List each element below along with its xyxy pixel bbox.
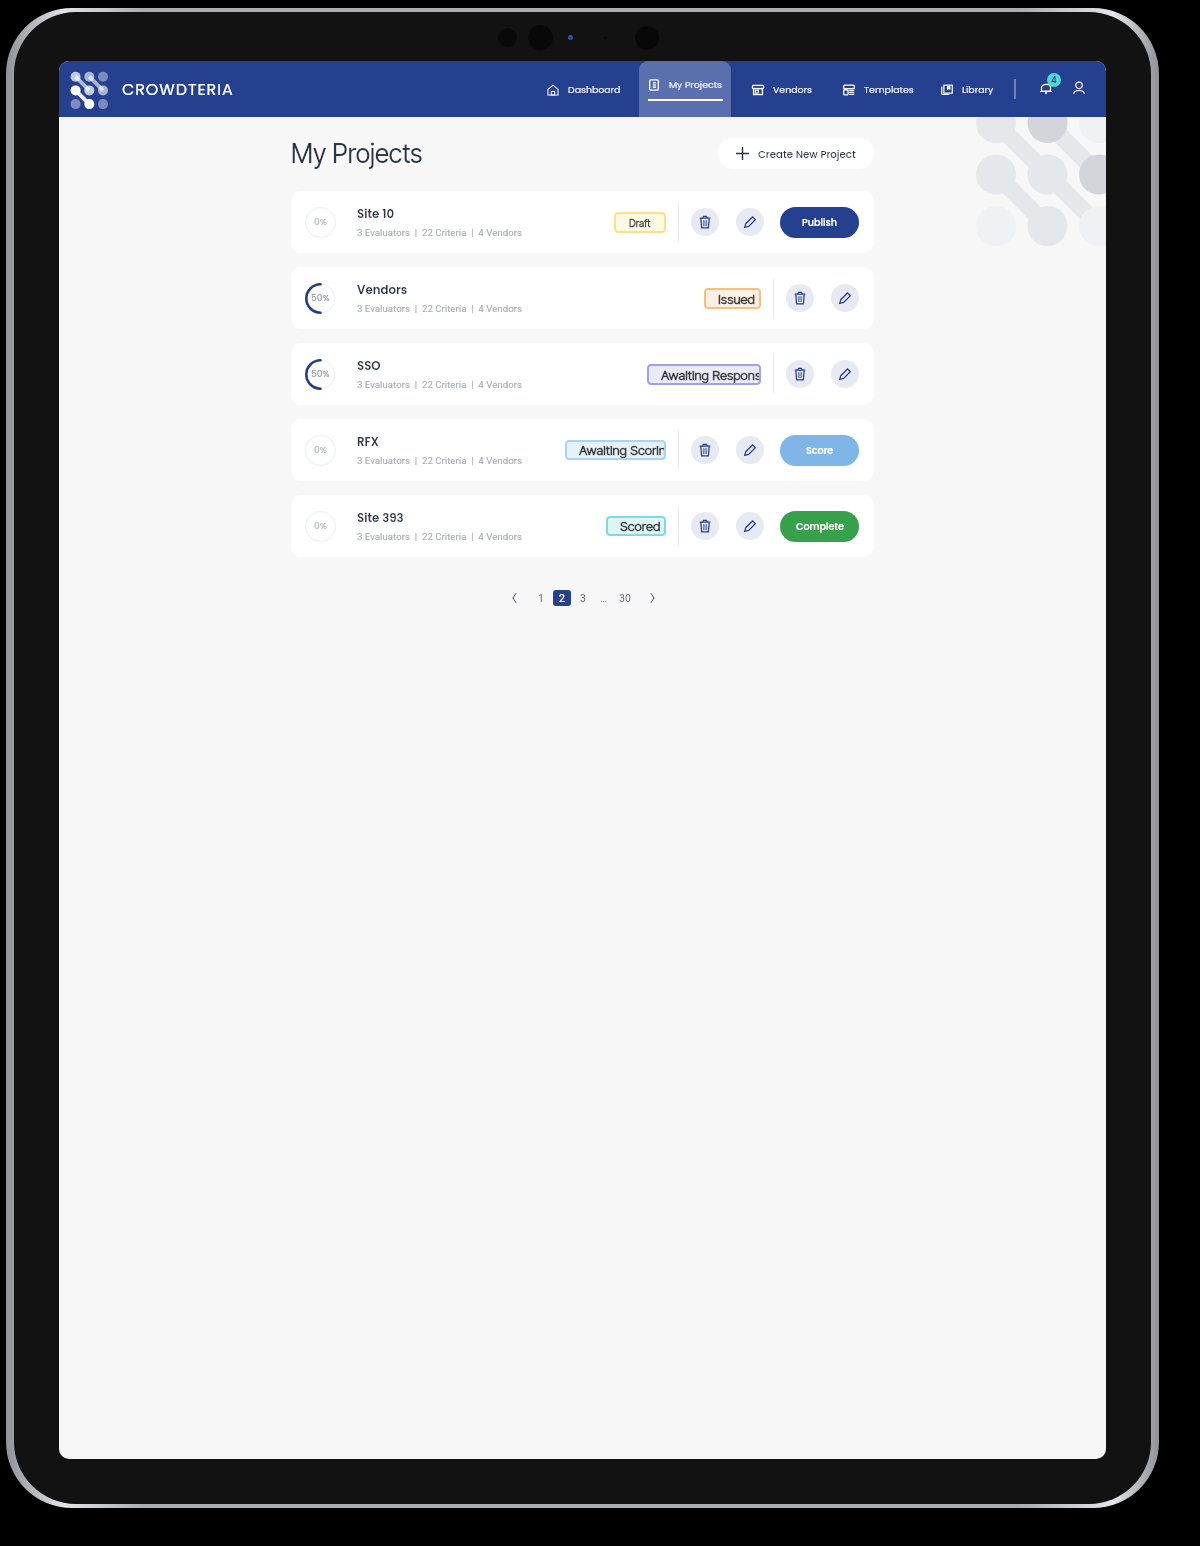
button[interactable]: 1 [532, 590, 550, 606]
staticText: CROWDTERIA [122, 78, 234, 100]
staticText: Vendors [357, 282, 408, 299]
staticText: Awaiting Response [661, 367, 761, 383]
staticText: … [600, 592, 608, 604]
staticText: My Projects [291, 138, 423, 169]
button[interactable]: Score [780, 435, 859, 466]
staticText: My Projects [669, 78, 723, 91]
button[interactable]: Dashboard [542, 61, 625, 117]
staticText: Dashboard [568, 83, 621, 96]
button[interactable]: Next page [642, 588, 662, 608]
staticText: 30 [619, 592, 631, 604]
button[interactable]: Edit [831, 284, 859, 312]
staticText: 0% [314, 520, 327, 533]
button[interactable]: Edit [736, 512, 764, 540]
button[interactable]: Scored [606, 516, 666, 536]
button[interactable]: 50% [291, 267, 874, 329]
staticText: Create New Project [758, 147, 856, 161]
button[interactable]: Previous page [504, 588, 524, 608]
staticText: 4 [1051, 74, 1057, 86]
staticText: RFX [357, 434, 379, 451]
button[interactable]: 2 [553, 590, 571, 606]
button[interactable]: Edit [831, 360, 859, 388]
button[interactable]: Create New Project [718, 138, 874, 169]
staticText: Awaiting Scoring [579, 442, 666, 458]
button[interactable]: Issued [704, 288, 761, 309]
button[interactable]: Account [1066, 75, 1092, 101]
staticText: 3 Evaluators | 22 Criteria | 4 Vendors [357, 531, 522, 542]
staticText: 3 Evaluators | 22 Criteria | 4 Vendors [357, 303, 522, 314]
button[interactable]: Vendors [746, 61, 818, 117]
button[interactable]: Delete [691, 436, 719, 464]
button[interactable]: 0% [291, 191, 874, 253]
button[interactable]: 0% [291, 419, 874, 481]
staticText: 3 [580, 592, 586, 604]
button[interactable]: Library [934, 61, 1001, 117]
button[interactable]: My Projects [639, 61, 731, 117]
staticText: Score [806, 444, 834, 457]
staticText: Site 10 [357, 206, 395, 223]
staticText: 50% [311, 292, 330, 305]
button[interactable]: Notifications [1033, 75, 1059, 101]
staticText: 3 Evaluators | 22 Criteria | 4 Vendors [357, 379, 522, 390]
button[interactable]: Draft [614, 212, 666, 233]
button[interactable]: 3 [574, 590, 592, 606]
button[interactable]: Edit [736, 436, 764, 464]
button[interactable]: Delete [691, 208, 719, 236]
button[interactable]: Delete [786, 360, 814, 388]
button[interactable]: Complete [780, 511, 859, 542]
staticText: 0% [314, 216, 327, 229]
button[interactable]: … [595, 590, 613, 606]
button[interactable]: Awaiting Response [647, 364, 761, 385]
staticText: 3 Evaluators | 22 Criteria | 4 Vendors [357, 455, 522, 466]
button[interactable]: 50% [291, 343, 874, 405]
staticText: Complete [796, 520, 844, 533]
button[interactable]: 30 [616, 590, 634, 606]
button[interactable]: Edit [736, 208, 764, 236]
button[interactable]: Delete [691, 512, 719, 540]
button[interactable]: Delete [786, 284, 814, 312]
staticText: Vendors [773, 83, 812, 96]
staticText: SSO [357, 358, 381, 375]
button[interactable]: Templates [838, 61, 918, 117]
staticText: 2 [559, 592, 565, 604]
button[interactable]: 0% [291, 495, 874, 557]
staticText: 3 Evaluators | 22 Criteria | 4 Vendors [357, 227, 522, 238]
button[interactable]: Publish [780, 207, 859, 238]
staticText: 50% [311, 368, 330, 381]
staticText: Templates [864, 83, 914, 96]
staticText: Publish [802, 216, 837, 229]
staticText: Library [962, 83, 994, 96]
staticText: Site 393 [357, 510, 404, 527]
staticText: 1 [538, 592, 544, 604]
staticText: Scored [620, 518, 661, 534]
staticText: 0% [314, 444, 327, 457]
staticText: Draft [629, 217, 651, 229]
staticText: Issued [718, 291, 755, 307]
button[interactable]: Awaiting Scoring [565, 440, 666, 460]
